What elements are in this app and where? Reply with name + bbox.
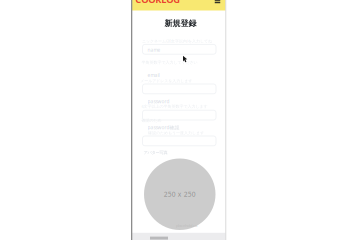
button[interactable]: COOKLOG home — [131, 0, 226, 13]
staticText: email — [148, 72, 160, 78]
button[interactable]: Menu — [214, 0, 220, 6]
staticText: 6文字以上の半角英数字で入力します — [141, 104, 207, 109]
staticText: 250 x 250 — [164, 190, 196, 199]
staticText: メールアドレスを入力します — [140, 78, 192, 83]
staticText: name — [148, 47, 161, 53]
button[interactable]: Choose avatar photo — [144, 158, 215, 230]
button[interactable]: 登録 — [150, 237, 168, 240]
staticText: ニックネーム(20文字以内)を入力してね — [142, 38, 212, 44]
staticText: placehold.co — [176, 223, 197, 228]
staticText: 半角英数字で入力してください — [141, 60, 197, 65]
staticText: password — [148, 98, 170, 104]
staticText: COOKLOG — [135, 0, 180, 6]
staticText: password確認 — [148, 124, 180, 131]
staticText: 新規登録 — [164, 18, 196, 28]
staticText: 確認のためもう一度入力します — [148, 130, 204, 135]
staticText: アバター写真 — [144, 150, 168, 155]
staticText: 確認のため — [141, 118, 161, 123]
